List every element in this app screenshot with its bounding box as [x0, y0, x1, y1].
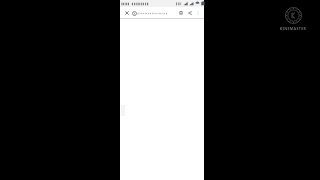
- button[interactable]: Close: [122, 8, 131, 17]
- button[interactable]: Bookmark: [176, 8, 185, 17]
- button[interactable]: [132, 8, 176, 18]
- button[interactable]: Share: [185, 8, 194, 17]
- button[interactable]: More options: [194, 9, 202, 17]
- staticText: KINEMASTER: [276, 26, 310, 31]
